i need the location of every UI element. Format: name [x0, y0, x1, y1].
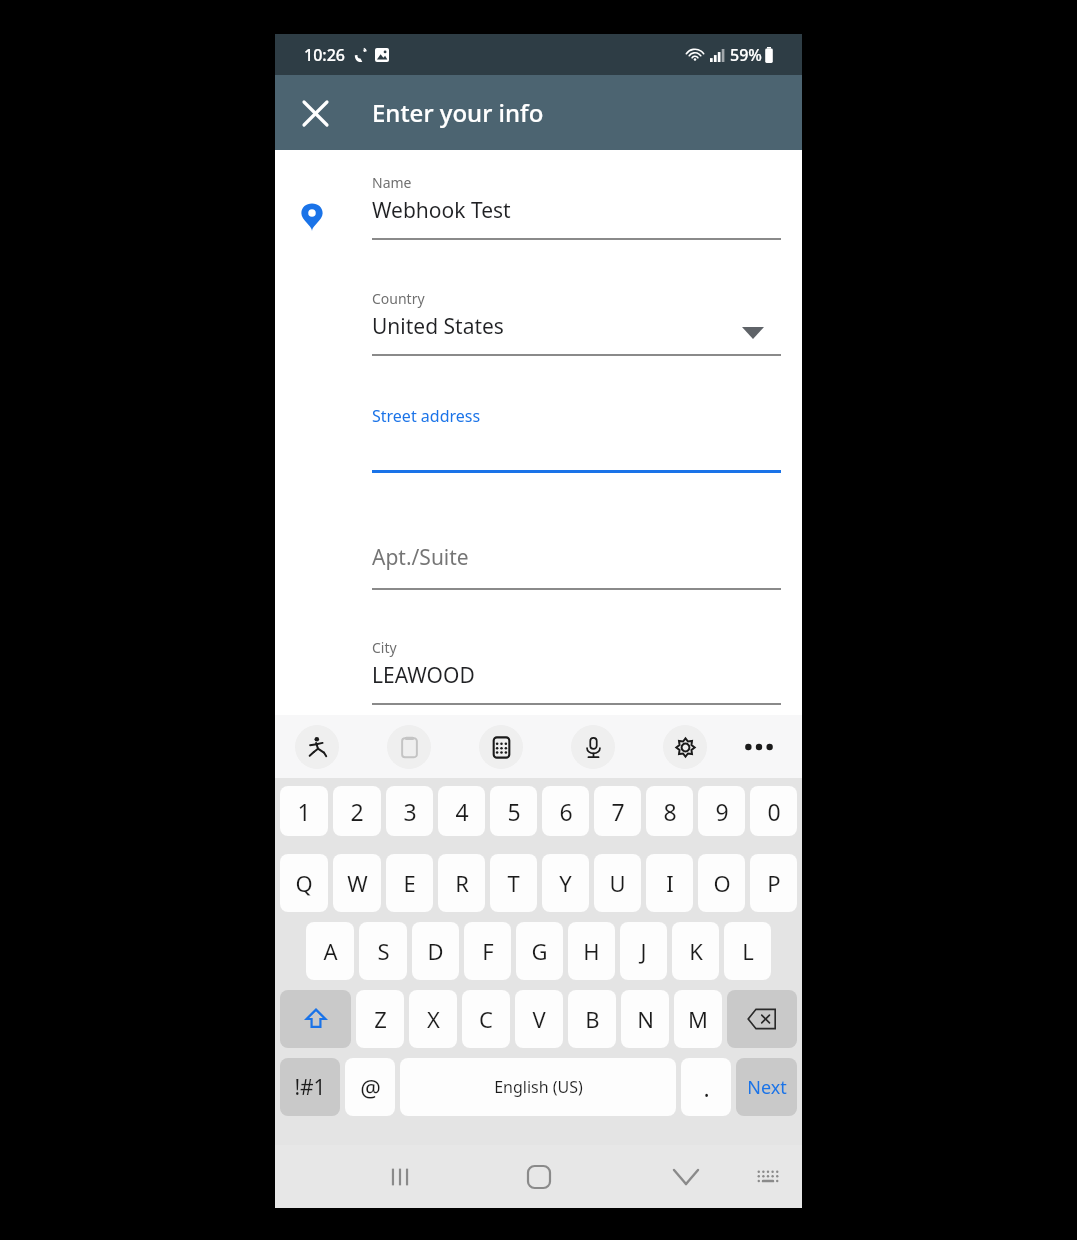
staticText: Next [747, 1075, 787, 1100]
button[interactable]: 2 [333, 786, 381, 836]
button[interactable]: P [750, 854, 797, 912]
staticText: @ [360, 1072, 381, 1103]
staticText: J [640, 936, 647, 966]
button[interactable]: U [594, 854, 641, 912]
staticText: V [532, 1004, 546, 1034]
button[interactable]: C [462, 990, 510, 1048]
button[interactable]: 6 [542, 786, 589, 836]
button[interactable]: 3 [386, 786, 433, 836]
button[interactable]: T [490, 854, 537, 912]
button[interactable]: Next [736, 1058, 797, 1116]
button[interactable]: N [621, 990, 669, 1048]
staticText: . [703, 1072, 710, 1103]
button[interactable]: Country [372, 289, 781, 356]
staticText: P [767, 868, 781, 898]
button[interactable]: Apt./Suite [372, 538, 781, 590]
button[interactable]: Handwriting [295, 725, 339, 769]
staticText: 6 [559, 796, 573, 827]
button[interactable]: Street address [372, 405, 781, 473]
staticText: 5 [507, 796, 521, 827]
button[interactable]: J [620, 922, 667, 980]
button[interactable]: 1 [280, 786, 328, 836]
button[interactable]: Clipboard [387, 725, 431, 769]
staticText: X [427, 1004, 440, 1034]
staticText: 9 [715, 796, 729, 827]
staticText: City [372, 638, 397, 657]
staticText: English (US) [494, 1076, 583, 1098]
staticText: E [403, 868, 416, 898]
button[interactable]: Name [372, 173, 781, 240]
button[interactable]: 8 [646, 786, 693, 836]
staticText: Q [295, 868, 313, 898]
button[interactable]: 9 [698, 786, 745, 836]
staticText: B [585, 1004, 600, 1034]
button[interactable]: 5 [490, 786, 537, 836]
button[interactable]: Q [280, 854, 328, 912]
staticText: 2 [350, 796, 364, 827]
button[interactable]: Home [509, 1145, 569, 1208]
staticText: M [688, 1004, 708, 1034]
staticText: 0 [767, 796, 781, 827]
staticText: T [507, 868, 520, 898]
button[interactable]: Settings [663, 725, 707, 769]
button[interactable]: K [672, 922, 719, 980]
staticText: !#1 [294, 1073, 326, 1102]
staticText: N [637, 1004, 654, 1034]
button[interactable]: Close [289, 87, 341, 139]
button[interactable]: !#1 [280, 1058, 340, 1116]
staticText: 3 [403, 796, 417, 827]
button[interactable]: More options [737, 725, 781, 769]
staticText: United States [372, 312, 504, 341]
staticText: Country [372, 289, 425, 308]
staticText: R [455, 868, 469, 898]
button[interactable]: Y [542, 854, 589, 912]
staticText: S [377, 936, 390, 966]
staticText: Name [372, 173, 412, 192]
staticText: Street address [372, 405, 481, 427]
staticText: LEAWOOD [372, 661, 475, 690]
button[interactable]: Keyboard modes [479, 725, 523, 769]
staticText: Y [559, 868, 572, 898]
button[interactable]: R [438, 854, 485, 912]
button[interactable]: X [409, 990, 457, 1048]
staticText: 10:26 [304, 44, 345, 66]
button[interactable]: Voice input [571, 725, 615, 769]
button[interactable]: Recents [370, 1145, 430, 1208]
button[interactable]: @ [345, 1058, 395, 1116]
staticText: Apt./Suite [372, 543, 469, 572]
button[interactable]: I [646, 854, 693, 912]
button[interactable]: English (US) [400, 1058, 676, 1116]
button[interactable]: Hide keyboard [656, 1145, 716, 1208]
button[interactable]: E [386, 854, 433, 912]
button[interactable]: Backspace [727, 990, 797, 1048]
staticText: H [583, 936, 600, 966]
button[interactable]: W [333, 854, 381, 912]
button[interactable]: L [724, 922, 771, 980]
button[interactable]: D [412, 922, 459, 980]
button[interactable]: V [515, 990, 563, 1048]
button[interactable]: 0 [750, 786, 797, 836]
staticText: D [427, 936, 444, 966]
staticText: L [742, 936, 754, 966]
button[interactable]: O [698, 854, 745, 912]
button[interactable]: A [306, 922, 354, 980]
button[interactable]: M [674, 990, 722, 1048]
staticText: 1 [297, 796, 311, 827]
button[interactable]: Z [356, 990, 404, 1048]
staticText: C [479, 1004, 493, 1034]
staticText: 59% [730, 44, 762, 66]
button[interactable]: . [681, 1058, 731, 1116]
button[interactable]: B [568, 990, 616, 1048]
button[interactable]: H [568, 922, 615, 980]
staticText: A [323, 936, 338, 966]
button[interactable]: 7 [594, 786, 641, 836]
button[interactable]: Change keyboard [740, 1145, 795, 1208]
staticText: 7 [611, 796, 625, 827]
button[interactable]: F [464, 922, 511, 980]
button[interactable]: 4 [438, 786, 485, 836]
staticText: Enter your info [372, 96, 544, 129]
button[interactable]: Shift [280, 990, 351, 1048]
button[interactable]: S [359, 922, 407, 980]
button[interactable]: City [372, 638, 781, 705]
button[interactable]: G [516, 922, 563, 980]
